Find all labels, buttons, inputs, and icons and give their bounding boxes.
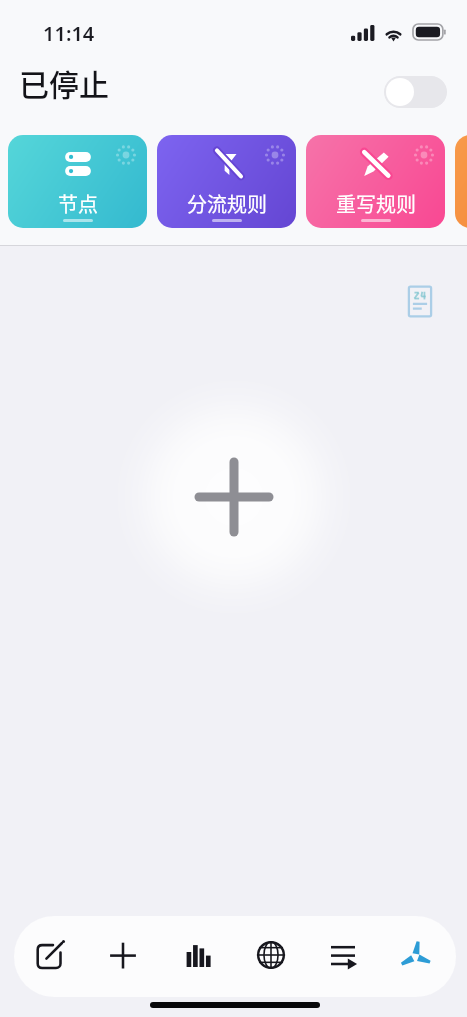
staticText: 分流规则 bbox=[187, 189, 267, 218]
staticText: 重写规则 bbox=[336, 189, 416, 218]
button[interactable]: Toggle VPN bbox=[384, 76, 447, 108]
button[interactable]: Config file bbox=[405, 283, 435, 320]
staticText: 节点 bbox=[58, 189, 98, 218]
button[interactable]: Statistics bbox=[172, 929, 224, 981]
button[interactable]: MitM bbox=[455, 135, 467, 228]
button[interactable]: Network bbox=[245, 929, 297, 981]
button[interactable]: Add bbox=[97, 929, 149, 981]
staticText: 已停止 bbox=[19, 61, 109, 104]
button[interactable]: 分流规则 bbox=[157, 135, 296, 228]
button[interactable]: Logs bbox=[317, 929, 369, 981]
button[interactable]: Profile bbox=[390, 929, 442, 981]
button[interactable]: Add profile bbox=[114, 377, 354, 617]
button[interactable]: 节点 bbox=[8, 135, 147, 228]
button[interactable]: 重写规则 bbox=[306, 135, 445, 228]
staticText: 11:14 bbox=[43, 20, 95, 47]
button[interactable]: Compose bbox=[24, 929, 76, 981]
